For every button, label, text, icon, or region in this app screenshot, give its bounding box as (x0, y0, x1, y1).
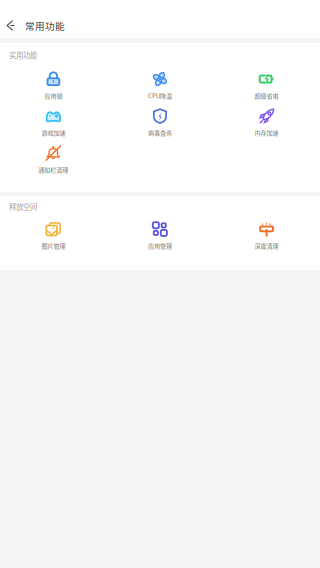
staticText: 应用管理 (148, 241, 172, 250)
button[interactable]: 应用锁 (0, 67, 107, 104)
button[interactable]: 通知栏清理 (0, 141, 107, 178)
staticText: 常用功能 (25, 18, 65, 32)
staticText: 超级省电 (255, 91, 279, 100)
button[interactable]: 深度清理 (213, 217, 320, 254)
staticText: 应用锁 (44, 91, 62, 100)
button[interactable]: CPU降温 (107, 67, 213, 104)
button[interactable]: 图片管理 (0, 217, 107, 254)
staticText: 实用功能 (9, 50, 37, 60)
staticText: 释放空间 (9, 201, 37, 212)
staticText: 深度清理 (255, 241, 279, 250)
button[interactable]: 游戏加速 (0, 104, 107, 141)
staticText: 病毒查杀 (148, 128, 172, 137)
staticText: 游戏加速 (41, 128, 65, 137)
staticText: 图片管理 (41, 241, 65, 250)
staticText: 通知栏清理 (38, 165, 68, 174)
button[interactable]: 病毒查杀 (107, 104, 213, 141)
staticText: CPU降温 (148, 91, 172, 100)
button[interactable]: 应用管理 (107, 217, 213, 254)
button[interactable]: Back (0, 12, 18, 38)
button[interactable]: 内存加速 (213, 104, 320, 141)
staticText: 内存加速 (255, 128, 279, 137)
button[interactable]: 超级省电 (213, 67, 320, 104)
